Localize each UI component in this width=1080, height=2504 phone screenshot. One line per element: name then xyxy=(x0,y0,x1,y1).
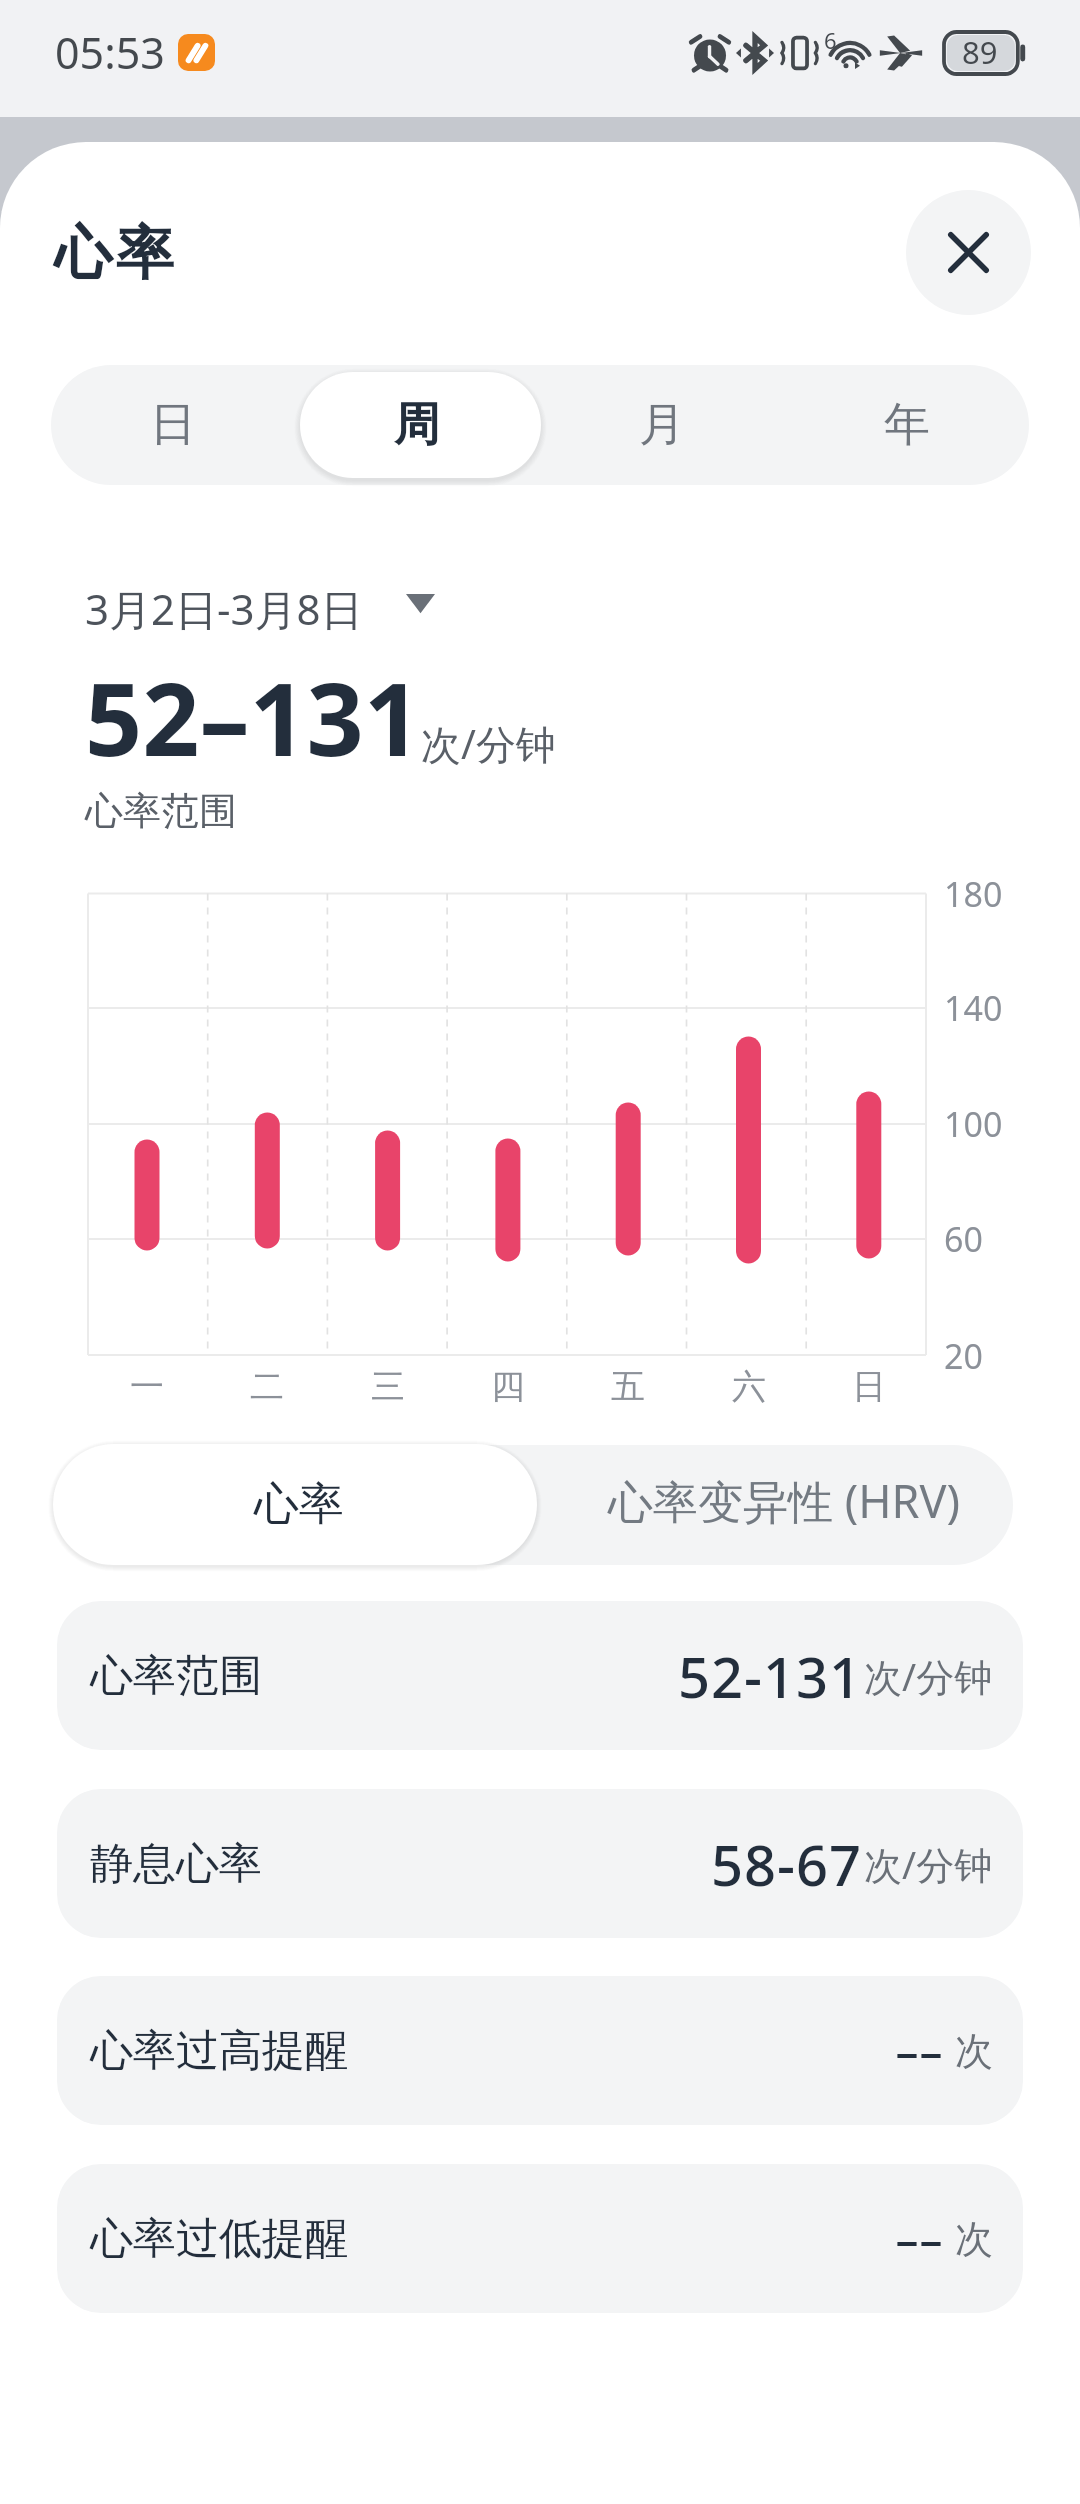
staticText: 次/分钟 xyxy=(421,716,556,771)
staticText: 次 xyxy=(955,2215,993,2263)
staticText: 心率过低提醒 xyxy=(90,2212,348,2266)
button[interactable]: 心率过低提醒 xyxy=(57,2164,1023,2313)
staticText: 100 xyxy=(944,1101,1003,1147)
staticText: 静息心率 xyxy=(90,1837,262,1891)
staticText: 周 xyxy=(394,396,440,454)
button[interactable]: 年 xyxy=(784,365,1029,485)
button[interactable]: 周 xyxy=(295,365,539,485)
button[interactable]: 心率过高提醒 xyxy=(57,1976,1023,2125)
staticText: 心率 xyxy=(52,217,176,290)
button[interactable]: 心率变异性 (HRV) xyxy=(537,1444,1013,1566)
staticText: 心率过高提醒 xyxy=(90,2024,348,2078)
staticText: 日 xyxy=(150,396,196,454)
staticText: 日 xyxy=(852,1365,886,1408)
staticText: 89 xyxy=(962,31,998,73)
staticText: 二 xyxy=(250,1365,284,1408)
staticText: 三 xyxy=(371,1365,405,1408)
staticText: 52-131 xyxy=(678,1638,863,1714)
staticText: 心率 xyxy=(254,1476,344,1533)
staticText: 年 xyxy=(884,396,930,454)
staticText: 6 xyxy=(824,25,837,55)
staticText: 05:53 xyxy=(55,23,165,82)
staticText: 心率范围 xyxy=(90,1649,262,1703)
button[interactable]: 月 xyxy=(539,365,784,485)
staticText: 六 xyxy=(732,1365,766,1408)
staticText: 58-67 xyxy=(711,1826,863,1902)
staticText: 3月2日-3月8日 xyxy=(85,580,363,637)
staticText: 心率变异性 (HRV) xyxy=(608,1470,961,1531)
staticText: 60 xyxy=(944,1216,983,1262)
staticText: 52–131 xyxy=(85,649,421,785)
staticText: 次 xyxy=(955,2027,993,2075)
staticText: 140 xyxy=(944,985,1003,1031)
button[interactable]: 心率 xyxy=(53,1444,537,1565)
staticText: 一 xyxy=(130,1365,164,1408)
staticText: –– xyxy=(895,2207,943,2270)
button[interactable]: 静息心率 xyxy=(57,1789,1023,1938)
staticText: 心率范围 xyxy=(85,787,237,835)
staticText: 次/分钟 xyxy=(864,1838,993,1890)
staticText: –– xyxy=(895,2019,943,2082)
staticText: 20 xyxy=(944,1333,983,1379)
staticText: 次/分钟 xyxy=(864,1650,993,1702)
button[interactable]: 3月2日-3月8日 xyxy=(85,580,435,637)
button[interactable]: 心率范围 xyxy=(57,1601,1023,1750)
staticText: 四 xyxy=(491,1365,525,1408)
button[interactable]: Close xyxy=(906,190,1031,315)
staticText: 月 xyxy=(639,396,685,454)
button[interactable]: 日 xyxy=(51,365,295,485)
staticText: 180 xyxy=(944,871,1003,917)
staticText: 五 xyxy=(611,1365,645,1408)
